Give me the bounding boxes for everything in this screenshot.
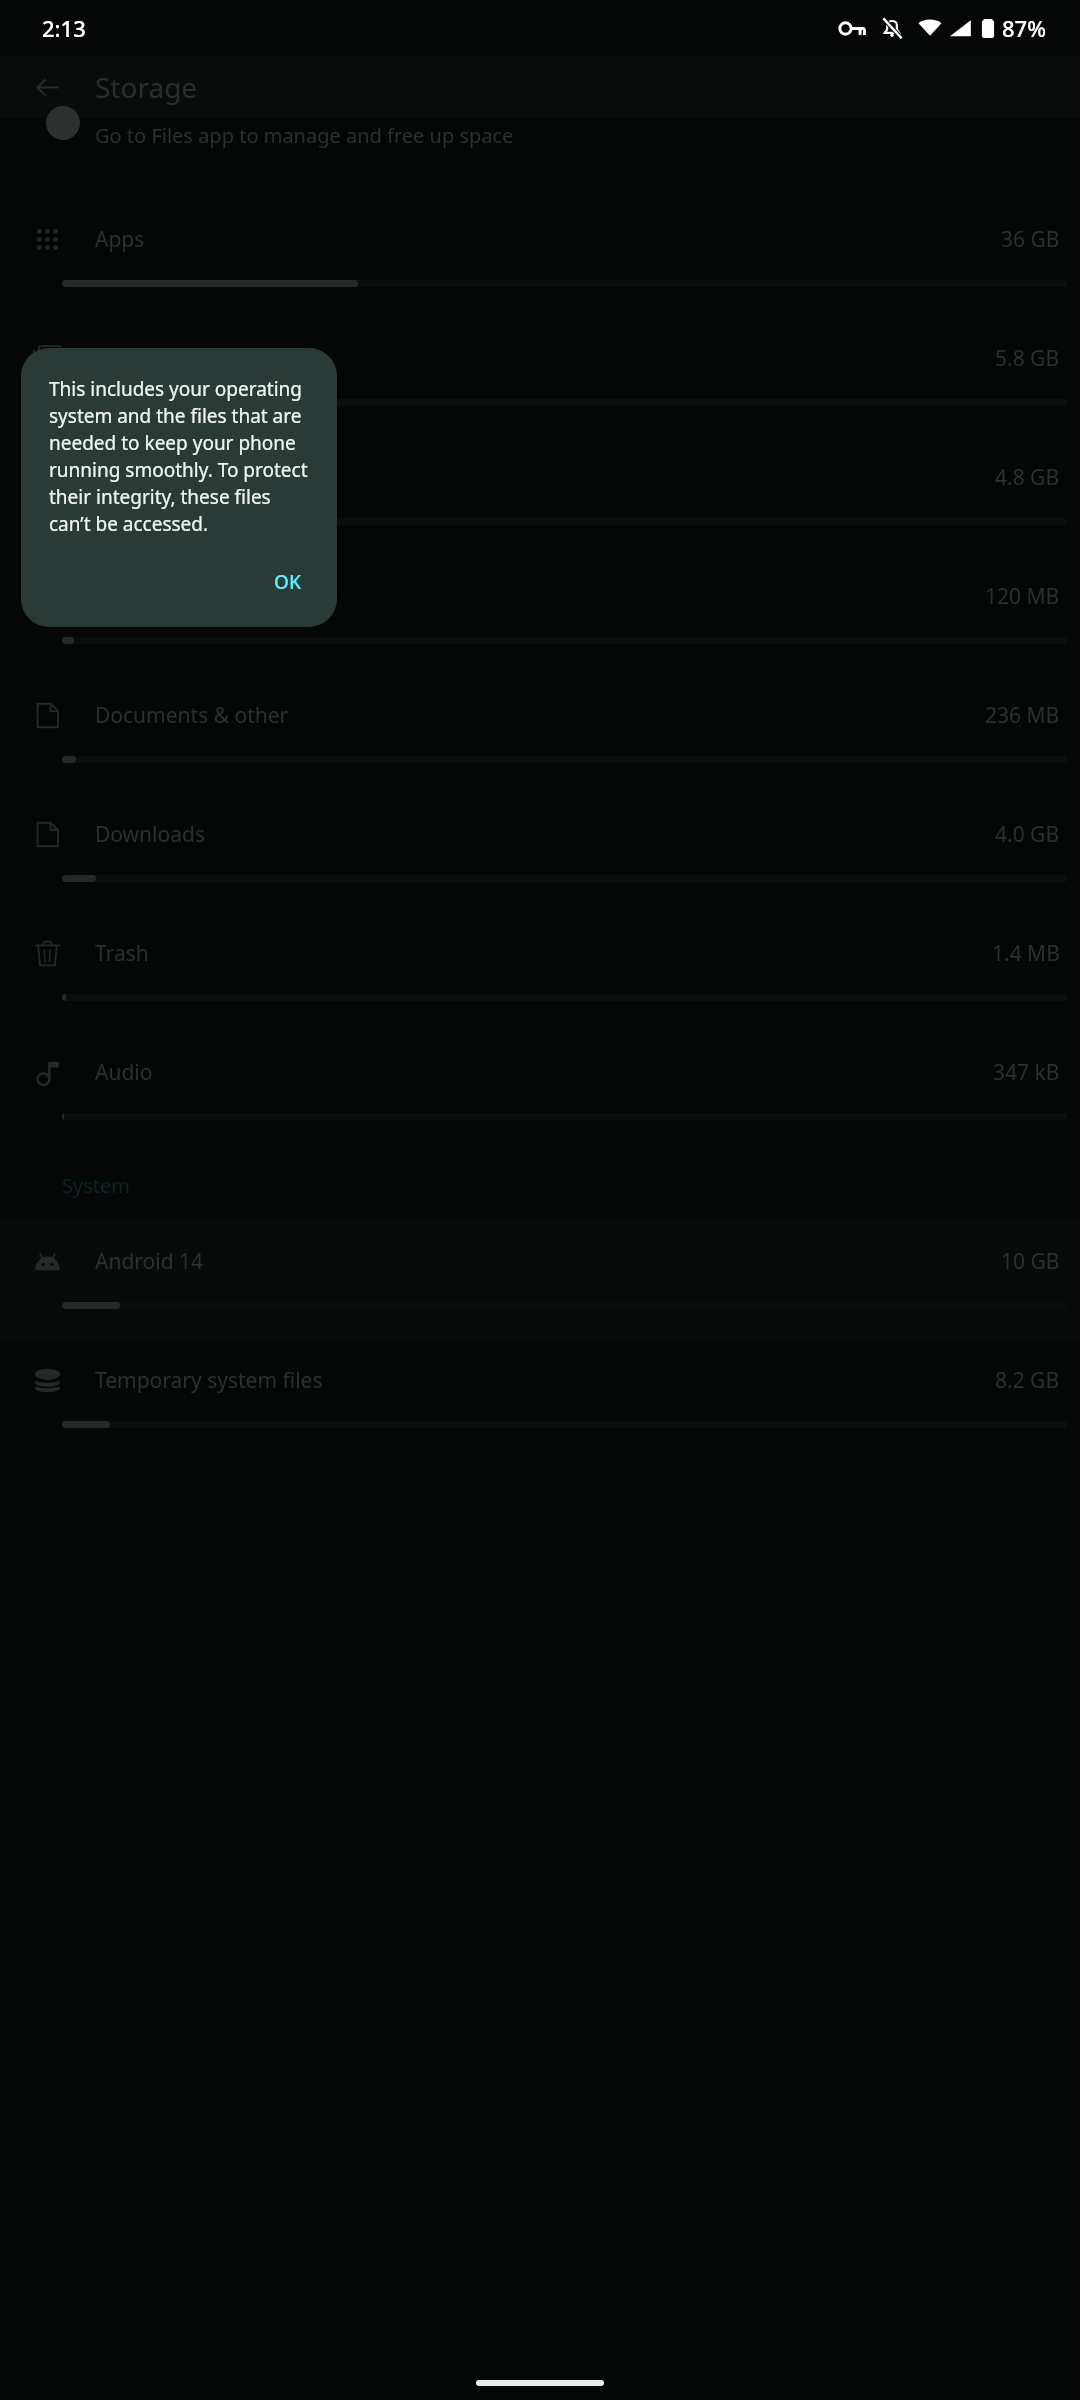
staticText: Audio bbox=[95, 1058, 993, 1087]
staticText: This includes your operating system and … bbox=[49, 376, 315, 537]
button[interactable]: This includes your operating system and … bbox=[21, 348, 337, 627]
staticText: Temporary system files bbox=[95, 1366, 995, 1395]
staticText: OK bbox=[274, 569, 301, 595]
button[interactable]: Audio bbox=[0, 1031, 1080, 1150]
staticText: 347 kB bbox=[993, 1058, 1060, 1087]
staticText: Go to Files app to manage and free up sp… bbox=[95, 122, 514, 149]
button[interactable]: Trash bbox=[0, 912, 1080, 1031]
button[interactable]: Videos bbox=[0, 436, 1080, 555]
staticText: 1.4 MB bbox=[992, 939, 1060, 968]
button[interactable]: Back bbox=[0, 56, 95, 118]
staticText: 5.8 GB bbox=[995, 344, 1060, 373]
staticText: Android 14 bbox=[95, 1247, 1001, 1276]
staticText: Apps bbox=[95, 225, 1001, 254]
staticText: Documents & other bbox=[95, 701, 985, 730]
staticText: Images bbox=[95, 344, 995, 373]
staticText: 236 MB bbox=[985, 701, 1060, 730]
button[interactable]: OK bbox=[254, 559, 321, 605]
staticText: 8.2 GB bbox=[995, 1366, 1060, 1395]
staticText: Downloads bbox=[95, 820, 995, 849]
staticText: 87% bbox=[1002, 13, 1046, 43]
button[interactable]: Documents & other bbox=[0, 674, 1080, 793]
staticText: 4.8 GB bbox=[995, 463, 1060, 492]
staticText: Trash bbox=[95, 939, 992, 968]
staticText: 4.0 GB bbox=[995, 820, 1060, 849]
button[interactable]: Go to Files app to manage and free up sp… bbox=[0, 118, 1080, 162]
button[interactable]: Temporary system files bbox=[0, 1339, 1080, 1458]
button[interactable]: Games bbox=[0, 555, 1080, 674]
button[interactable]: Downloads bbox=[0, 793, 1080, 912]
staticText: 2:13 bbox=[42, 13, 86, 43]
staticText: 120 MB bbox=[985, 582, 1060, 611]
button[interactable]: Apps bbox=[0, 198, 1080, 317]
staticText: 36 GB bbox=[1001, 225, 1060, 254]
staticText: Storage bbox=[95, 68, 198, 106]
button[interactable]: Images bbox=[0, 317, 1080, 436]
staticText: 10 GB bbox=[1001, 1247, 1060, 1276]
button[interactable]: Android 14 bbox=[0, 1220, 1080, 1339]
staticText: Games bbox=[95, 582, 985, 611]
staticText: System bbox=[62, 1172, 130, 1199]
staticText: Videos bbox=[95, 463, 995, 492]
